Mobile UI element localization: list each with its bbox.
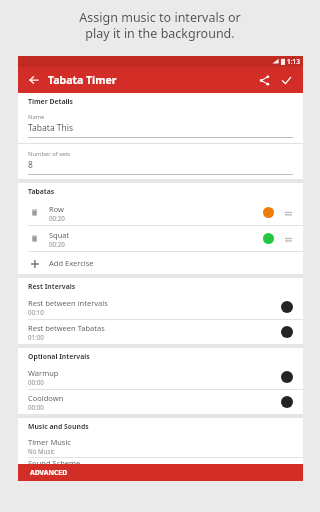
- staticText: ADVANCED: [30, 468, 68, 477]
- button[interactable]: Color: [281, 301, 293, 313]
- staticText: Tabata Timer: [48, 73, 117, 87]
- button[interactable]: Timer Music: [18, 435, 303, 457]
- button[interactable]: Color: [281, 326, 293, 338]
- staticText: 00:00: [28, 403, 44, 411]
- button[interactable]: Rest between Tabatas: [18, 320, 303, 344]
- staticText: Tabatas: [28, 187, 55, 196]
- staticText: Rest between Tabatas: [28, 323, 105, 333]
- staticText: Rest Intervals: [28, 282, 76, 291]
- staticText: Assign music to intervals or play it in …: [0, 9, 320, 41]
- staticText: Warmup: [28, 368, 59, 378]
- staticText: Timer Details: [28, 97, 73, 106]
- button[interactable]: Name: [18, 110, 303, 140]
- button[interactable]: Cooldown: [18, 390, 303, 414]
- staticText: No Music: [28, 447, 56, 455]
- staticText: Rest between intervals: [28, 298, 108, 308]
- staticText: Music and Sounds: [28, 422, 89, 431]
- staticText: 1:13: [287, 57, 300, 66]
- staticText: Tabata This: [28, 122, 74, 134]
- button[interactable]: Delete Row: [28, 206, 41, 219]
- staticText: 00:20: [49, 240, 65, 248]
- button[interactable]: Delete Squat: [18, 226, 303, 251]
- staticText: 00:20: [49, 214, 65, 222]
- button[interactable]: Delete Row: [18, 200, 303, 225]
- staticText: Optional Intervals: [28, 352, 90, 361]
- button[interactable]: Number of sets: [18, 147, 303, 177]
- staticText: Sound Scheme: [28, 458, 81, 464]
- staticText: Timer Music: [28, 437, 71, 447]
- staticText: Name: [28, 113, 45, 121]
- button[interactable]: Add Exercise: [18, 252, 303, 274]
- staticText: Add Exercise: [49, 258, 94, 268]
- button[interactable]: Color: [263, 207, 274, 218]
- button[interactable]: Reorder: [283, 206, 293, 220]
- button[interactable]: Color: [281, 396, 293, 408]
- button[interactable]: Warmup: [18, 365, 303, 389]
- button[interactable]: Delete Squat: [28, 232, 41, 245]
- button[interactable]: ADVANCED: [18, 464, 303, 481]
- staticText: 00:10: [28, 308, 44, 316]
- button[interactable]: Share: [254, 70, 274, 90]
- staticText: Cooldown: [28, 393, 64, 403]
- staticText: 00:00: [28, 378, 44, 386]
- button[interactable]: Back: [25, 71, 43, 89]
- button[interactable]: Save: [276, 70, 296, 90]
- button[interactable]: Color: [263, 233, 274, 244]
- staticText: 8: [28, 159, 33, 171]
- staticText: Number of sets: [28, 150, 71, 158]
- staticText: 01:00: [28, 333, 44, 341]
- button[interactable]: Reorder: [283, 232, 293, 246]
- staticText: Row: [49, 204, 64, 214]
- button[interactable]: Rest between intervals: [18, 295, 303, 319]
- button[interactable]: Color: [281, 371, 293, 383]
- button[interactable]: Sound Scheme: [18, 458, 303, 464]
- staticText: Squat: [49, 230, 70, 240]
